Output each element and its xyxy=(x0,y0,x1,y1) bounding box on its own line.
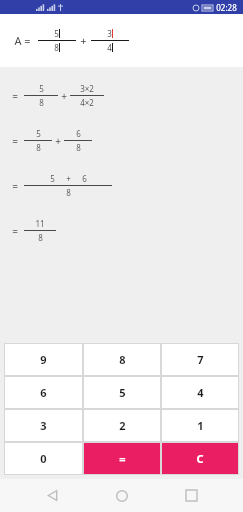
staticText: 8 xyxy=(119,352,126,367)
staticText: = xyxy=(12,179,18,193)
staticText: A = xyxy=(14,33,31,48)
staticText: 4×2 xyxy=(80,97,94,108)
staticText: 5 xyxy=(50,173,55,184)
staticText: 3 xyxy=(40,418,47,433)
button[interactable]: 9 xyxy=(5,344,82,375)
button[interactable]: 8 xyxy=(84,344,160,375)
button[interactable]: 4 xyxy=(162,377,238,408)
staticText: 8 xyxy=(39,97,44,108)
staticText: 02:28 xyxy=(216,2,237,13)
staticText: + xyxy=(61,89,67,103)
staticText: 5 xyxy=(119,385,126,400)
button[interactable]: Recent apps xyxy=(174,479,208,512)
button[interactable]: 7 xyxy=(162,344,238,375)
staticText: = xyxy=(12,134,18,148)
staticText: 8 xyxy=(76,142,81,153)
staticText: C xyxy=(196,451,204,466)
staticText: 2 xyxy=(119,418,126,433)
staticText: 5 xyxy=(54,28,59,39)
staticText: + xyxy=(80,33,87,48)
button[interactable]: C xyxy=(162,443,238,474)
staticText: = xyxy=(12,224,18,238)
staticText: 8 xyxy=(38,232,43,243)
button[interactable]: Home xyxy=(105,479,139,512)
staticText: 5 xyxy=(36,128,41,139)
staticText: 6 xyxy=(40,385,47,400)
staticText: 4 xyxy=(107,42,112,53)
staticText: 0 xyxy=(40,451,47,466)
staticText: 6 xyxy=(82,173,87,184)
staticText: + xyxy=(55,134,61,148)
staticText: 4 xyxy=(197,385,204,400)
button[interactable]: 5 xyxy=(84,377,160,408)
staticText: 8 xyxy=(66,187,71,198)
staticText: 8 xyxy=(54,42,59,53)
staticText: = xyxy=(119,451,126,466)
staticText: 8 xyxy=(36,142,41,153)
staticText: 3 xyxy=(107,28,112,39)
staticText: 6 xyxy=(76,128,81,139)
staticText: 1 xyxy=(197,418,204,433)
staticText: 3×2 xyxy=(80,83,94,94)
button[interactable]: 6 xyxy=(5,377,82,408)
button[interactable]: = xyxy=(84,443,160,474)
button[interactable]: 2 xyxy=(84,410,160,441)
button[interactable]: 3 xyxy=(5,410,82,441)
button[interactable]: 1 xyxy=(162,410,238,441)
staticText: 5 xyxy=(39,83,44,94)
staticText: 11 xyxy=(35,218,45,229)
button[interactable]: Back xyxy=(35,479,69,512)
button[interactable]: 0 xyxy=(5,443,82,474)
staticText: 7 xyxy=(197,352,204,367)
staticText: 9 xyxy=(40,352,47,367)
staticText: = xyxy=(12,89,18,103)
staticText: + xyxy=(66,173,71,184)
